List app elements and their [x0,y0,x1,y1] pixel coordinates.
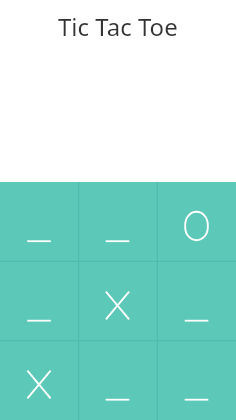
button[interactable]: Empty cell [0,262,78,341]
button[interactable]: Empty cell [78,182,157,262]
button[interactable]: Empty cell [157,341,236,420]
button[interactable]: Cell X [0,341,78,420]
staticText: Tic Tac Toe [58,10,178,43]
button[interactable]: Cell X [78,262,157,341]
button[interactable]: Empty cell [157,262,236,341]
button[interactable]: Cell O [157,182,236,262]
button[interactable]: Empty cell [78,341,157,420]
button[interactable]: Empty cell [0,182,78,262]
